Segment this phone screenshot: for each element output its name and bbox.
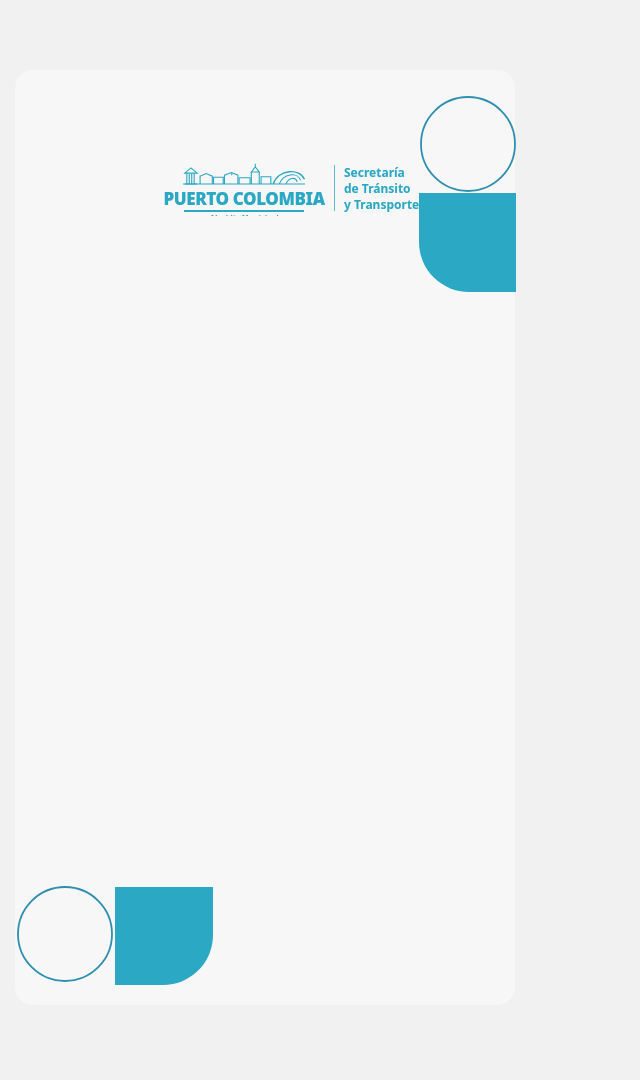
other: Puerto Colombia skyline — [183, 160, 305, 186]
staticText: Secretaría — [344, 164, 405, 180]
staticText: PUERTO COLOMBIA — [163, 187, 325, 210]
staticText: Alcaldía Municipal — [210, 213, 279, 216]
staticText: y Transporte — [344, 196, 420, 212]
button[interactable]: Puerto Colombia skyline — [163, 160, 420, 216]
staticText: de Tránsito — [344, 180, 411, 196]
